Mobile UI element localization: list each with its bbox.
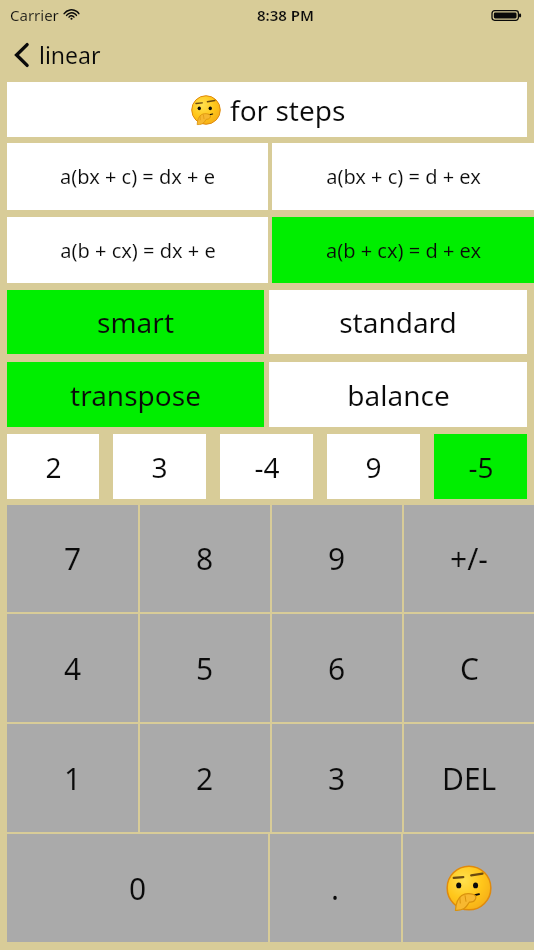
button[interactable]: for steps bbox=[7, 82, 527, 137]
staticText: linear bbox=[39, 39, 101, 70]
button[interactable]: a(bx + c) = dx + e bbox=[7, 143, 268, 210]
staticText: -5 bbox=[468, 448, 494, 486]
staticText: DEL bbox=[442, 758, 497, 799]
button[interactable]: -5 bbox=[434, 434, 527, 499]
staticText: 1 bbox=[64, 758, 82, 799]
staticText: 8 bbox=[196, 538, 214, 579]
button[interactable]: 0 bbox=[7, 834, 268, 942]
button[interactable]: a(bx + c) = d + ex bbox=[272, 143, 534, 210]
staticText: 0 bbox=[129, 868, 147, 909]
button[interactable]: 9 bbox=[327, 434, 420, 499]
staticText: +/- bbox=[450, 538, 488, 579]
staticText: . bbox=[331, 868, 340, 909]
button[interactable]: a(b + cx) = d + ex bbox=[272, 217, 534, 283]
staticText: 8:38 PM bbox=[257, 5, 314, 25]
staticText: transpose bbox=[70, 376, 201, 414]
button[interactable]: 8 bbox=[140, 505, 270, 612]
staticText: a(b + cx) = d + ex bbox=[326, 237, 481, 264]
button[interactable]: 2 bbox=[7, 434, 99, 499]
staticText: 3 bbox=[328, 758, 346, 799]
staticText: 9 bbox=[365, 448, 382, 486]
button[interactable]: Back bbox=[0, 35, 109, 74]
staticText: 3 bbox=[151, 448, 168, 486]
staticText: 2 bbox=[45, 448, 62, 486]
staticText: a(bx + c) = dx + e bbox=[60, 163, 215, 190]
button[interactable]: 3 bbox=[272, 724, 402, 832]
button[interactable]: smart bbox=[7, 290, 264, 354]
staticText: 9 bbox=[328, 538, 346, 579]
staticText: a(b + cx) = dx + e bbox=[60, 237, 216, 264]
staticText: 6 bbox=[328, 648, 346, 689]
button[interactable]: DEL bbox=[404, 724, 534, 832]
staticText: 2 bbox=[196, 758, 214, 799]
staticText: C bbox=[460, 648, 479, 689]
button[interactable]: transpose bbox=[7, 362, 264, 427]
button[interactable]: Show steps bbox=[403, 834, 534, 942]
button[interactable]: 5 bbox=[140, 614, 270, 722]
staticText: a(bx + c) = d + ex bbox=[326, 163, 481, 190]
button[interactable]: 7 bbox=[7, 505, 138, 612]
button[interactable]: 6 bbox=[272, 614, 402, 722]
staticText: 4 bbox=[64, 648, 82, 689]
button[interactable]: 1 bbox=[7, 724, 138, 832]
button[interactable]: balance bbox=[269, 362, 527, 427]
button[interactable]: a(b + cx) = dx + e bbox=[7, 217, 268, 283]
staticText: 5 bbox=[196, 648, 214, 689]
button[interactable]: . bbox=[270, 834, 401, 942]
staticText: for steps bbox=[230, 91, 346, 129]
button[interactable]: standard bbox=[269, 290, 527, 354]
button[interactable]: +/- bbox=[404, 505, 534, 612]
button[interactable]: 9 bbox=[272, 505, 402, 612]
staticText: smart bbox=[97, 303, 174, 341]
button[interactable]: 2 bbox=[140, 724, 270, 832]
staticText: standard bbox=[339, 303, 457, 341]
staticText: 7 bbox=[64, 538, 82, 579]
button[interactable]: 3 bbox=[113, 434, 206, 499]
staticText: balance bbox=[347, 376, 450, 414]
button[interactable]: -4 bbox=[220, 434, 313, 499]
staticText: Carrier bbox=[10, 5, 59, 25]
staticText: -4 bbox=[254, 448, 280, 486]
button[interactable]: C bbox=[404, 614, 534, 722]
button[interactable]: 4 bbox=[7, 614, 138, 722]
